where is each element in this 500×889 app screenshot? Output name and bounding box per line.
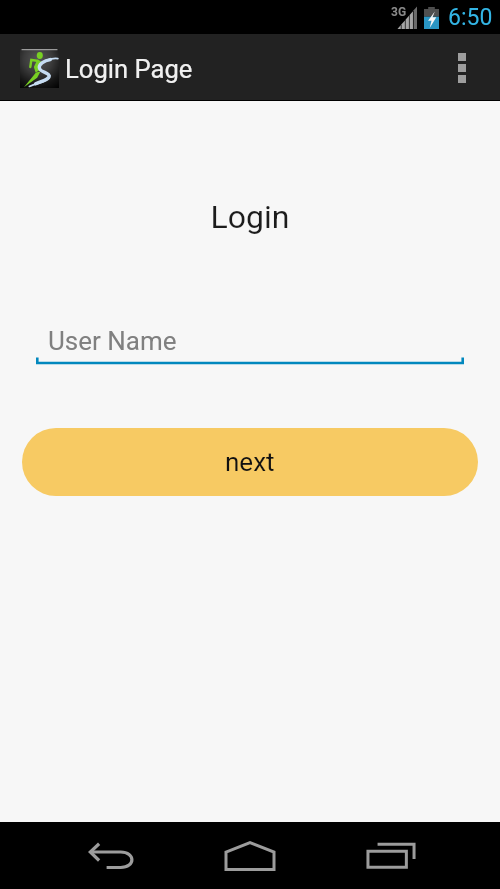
- button[interactable]: Back: [61, 822, 161, 889]
- staticText: 6:50: [448, 4, 493, 31]
- button[interactable]: Home: [200, 822, 300, 889]
- other: App icon: [20, 49, 59, 88]
- staticText: Login Page: [65, 54, 193, 84]
- staticText: User Name: [48, 326, 177, 356]
- staticText: 3G: [391, 5, 407, 19]
- button[interactable]: More options: [439, 34, 485, 101]
- button[interactable]: next: [22, 428, 478, 496]
- button[interactable]: App icon: [0, 34, 193, 101]
- staticText: next: [225, 447, 275, 477]
- button[interactable]: User Name: [36, 318, 464, 368]
- button[interactable]: Recent apps: [341, 822, 441, 889]
- staticText: Login: [0, 198, 500, 236]
